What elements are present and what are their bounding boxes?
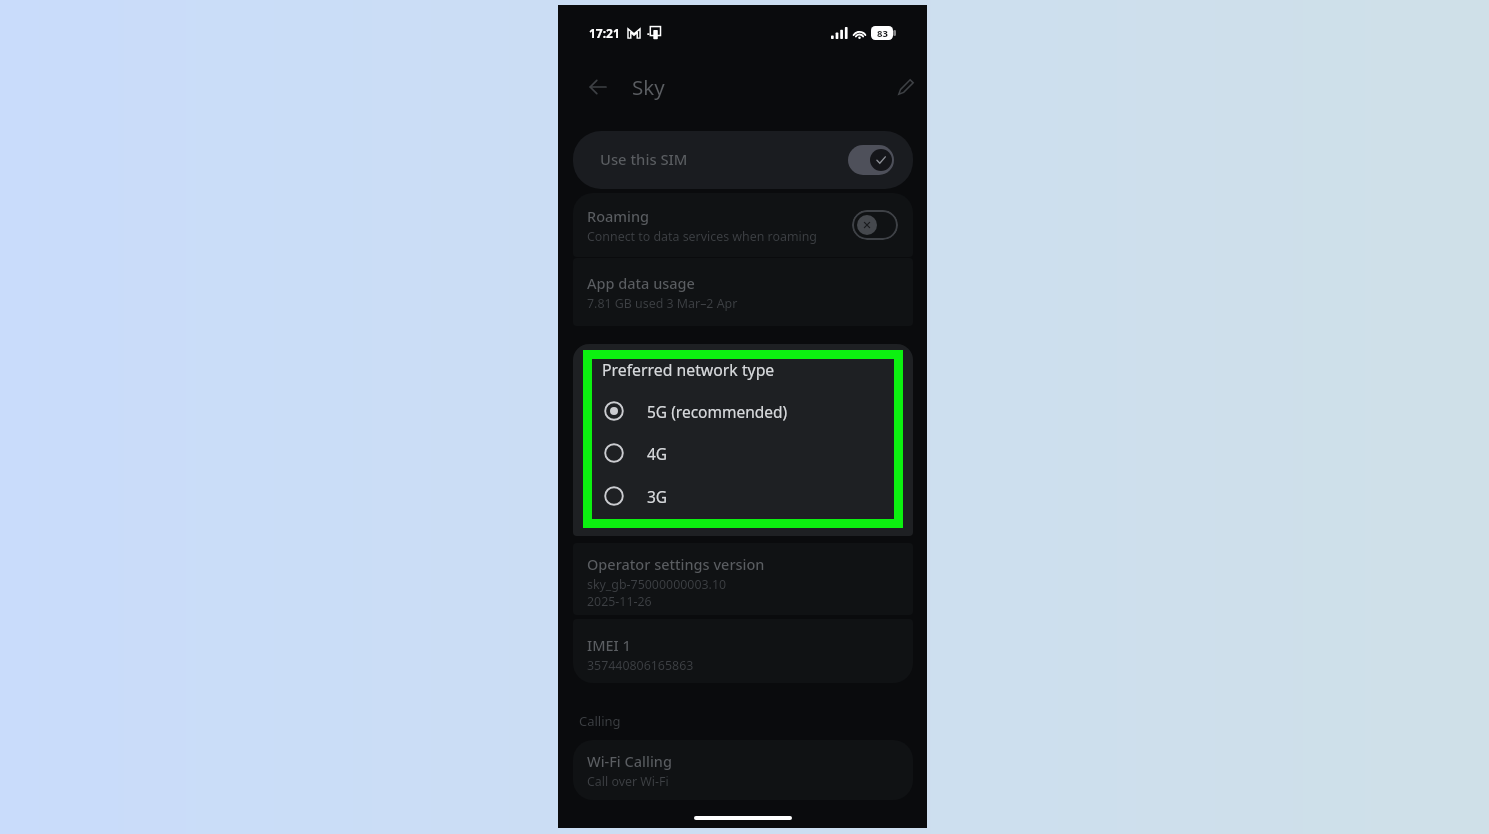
staticText: 4G <box>647 443 668 464</box>
button[interactable]: Edit <box>886 67 926 107</box>
button[interactable]: Operator settings version <box>573 543 913 615</box>
button[interactable]: Preferred network type <box>592 359 894 519</box>
button[interactable]: 5G (recommended) <box>592 394 894 428</box>
button[interactable]: App data usage <box>573 258 913 326</box>
button[interactable]: Roaming toggle <box>852 210 898 240</box>
button[interactable]: Wi-Fi Calling <box>573 740 913 800</box>
button[interactable]: 4G <box>592 436 894 470</box>
staticText: Operator settings version <box>587 554 765 574</box>
button[interactable]: Back <box>578 67 618 107</box>
staticText: App data usage <box>587 273 695 293</box>
button[interactable]: Use this SIM toggle <box>848 145 894 175</box>
button[interactable]: 3G <box>592 479 894 513</box>
button[interactable]: Roaming <box>573 193 913 257</box>
staticText: 7.81 GB used 3 Mar–2 Apr <box>587 295 738 312</box>
staticText: Roaming <box>587 206 650 226</box>
staticText: Call over Wi-Fi <box>587 773 669 790</box>
staticText: Wi-Fi Calling <box>587 751 672 771</box>
staticText: Sky <box>632 73 665 101</box>
staticText: sky_gb-75000000003.10 <box>587 576 727 593</box>
button[interactable]: IMEI 1 <box>573 619 913 683</box>
staticText: IMEI 1 <box>587 635 631 655</box>
staticText: 83 <box>877 27 888 40</box>
staticText: 2025-11-26 <box>587 593 652 610</box>
staticText: Use this SIM <box>600 149 688 169</box>
button[interactable]: Use this SIM <box>573 131 913 189</box>
staticText: Connect to data services when roaming <box>587 228 817 245</box>
staticText: Calling <box>579 712 621 730</box>
staticText: Preferred network type <box>602 359 775 381</box>
staticText: 17:21 <box>589 25 620 41</box>
staticText: 3G <box>647 486 668 507</box>
staticText: 5G (recommended) <box>647 401 788 422</box>
staticText: 357440806165863 <box>587 657 694 674</box>
